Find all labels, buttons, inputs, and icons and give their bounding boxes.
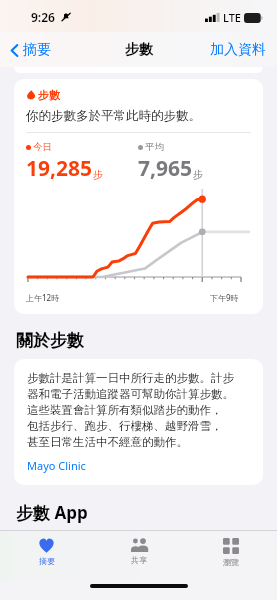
staticText: 步數 <box>38 88 60 102</box>
staticText: 平均 <box>145 141 164 153</box>
staticText: 19,285 <box>26 154 93 183</box>
staticText: 步數 App <box>16 501 88 524</box>
staticText: 步數 <box>125 41 153 59</box>
staticText: 7,965 <box>138 154 193 183</box>
staticText: LTE <box>223 10 241 25</box>
staticText: 步 <box>193 168 203 181</box>
button[interactable]: 摘要 <box>0 531 93 580</box>
button[interactable]: 步數計是計算一日中所行走的步數。計步 器和電子活動追蹤器可幫助你計算步數。 這些… <box>14 359 263 485</box>
staticText: 共享 <box>131 555 147 565</box>
button[interactable]: Mayo Clinic <box>27 458 86 473</box>
button[interactable]: 瀏覽 <box>185 531 277 580</box>
staticText: 關於步數 <box>16 330 84 351</box>
staticText: 你的步數多於平常此時的步數。 <box>26 108 201 124</box>
staticText: 下午9時 <box>210 292 239 303</box>
staticText: 摘要 <box>23 41 51 59</box>
staticText: 今日 <box>33 141 52 153</box>
button[interactable]: 步數 <box>14 79 263 314</box>
staticText: 步數計是計算一日中所行走的步數。計步 器和電子活動追蹤器可幫助你計算步數。 這些… <box>27 371 234 450</box>
staticText: 9:26 <box>31 9 55 25</box>
staticText: 步 <box>93 168 103 181</box>
button[interactable]: 共享 <box>93 531 185 580</box>
staticText: 瀏覽 <box>223 557 239 567</box>
staticText: 摘要 <box>39 556 55 566</box>
button[interactable]: 加入資料 <box>207 37 269 63</box>
staticText: 上午12時 <box>26 292 60 303</box>
button[interactable]: 摘要 <box>6 37 55 63</box>
